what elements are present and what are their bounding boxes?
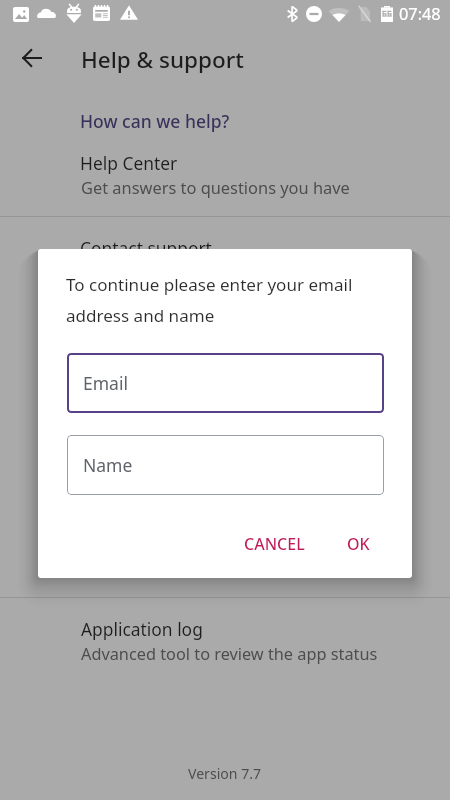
- staticText: Frequently asked questions: [80, 404, 305, 428]
- staticText: To continue please enter your email addr…: [66, 273, 376, 327]
- staticText: Terms and conditions: [80, 488, 256, 512]
- staticText: Tell us about an issue you experienced: [81, 345, 377, 367]
- staticText: Email: [83, 371, 128, 395]
- staticText: How can we help?: [80, 109, 230, 133]
- staticText: Version 7.7: [188, 764, 262, 783]
- staticText: Application log: [81, 617, 203, 641]
- button[interactable]: Back: [8, 34, 56, 82]
- staticText: Help Center: [80, 151, 178, 175]
- staticText: Find the answers to common questions: [81, 429, 385, 451]
- staticText: 07:48: [399, 3, 441, 25]
- staticText: Name: [83, 453, 133, 477]
- button[interactable]: CANCEL: [232, 523, 317, 565]
- staticText: Help & support: [81, 44, 244, 75]
- staticText: Contact support: [80, 236, 212, 260]
- staticText: Get answers to questions you have: [81, 176, 350, 198]
- button[interactable]: Email: [67, 353, 384, 413]
- button[interactable]: OK: [335, 523, 382, 565]
- staticText: Send us a message and we will reply soon: [81, 261, 403, 283]
- staticText: CANCEL: [244, 533, 305, 555]
- button[interactable]: Name: [67, 435, 384, 495]
- staticText: Report a problem: [80, 320, 224, 344]
- staticText: OK: [347, 533, 370, 555]
- staticText: Advanced tool to review the app status: [81, 643, 378, 665]
